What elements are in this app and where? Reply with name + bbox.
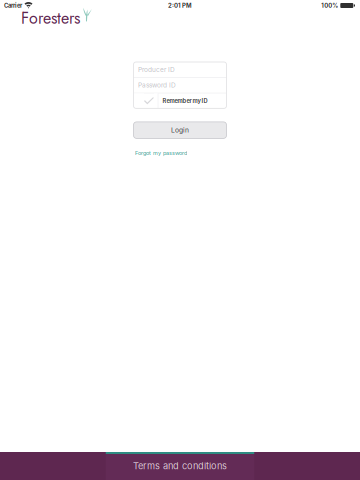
- button[interactable]: Login: [133, 122, 226, 138]
- staticText: 100%: [321, 2, 338, 9]
- button[interactable]: Forgot my password: [133, 149, 226, 157]
- staticText: Foresters: [21, 7, 80, 30]
- button[interactable]: Terms and conditions: [106, 452, 254, 480]
- staticText: Carrier: [4, 2, 22, 9]
- staticText: Login: [171, 126, 189, 134]
- staticText: Terms and conditions: [133, 460, 227, 471]
- staticText: Producer ID: [138, 65, 175, 73]
- staticText: 2:01 PM: [168, 2, 192, 9]
- staticText: Password ID: [138, 81, 176, 89]
- button[interactable]: Remember my ID: [133, 93, 226, 108]
- staticText: Remember my ID: [162, 97, 207, 104]
- staticText: Forgot my password: [135, 150, 187, 156]
